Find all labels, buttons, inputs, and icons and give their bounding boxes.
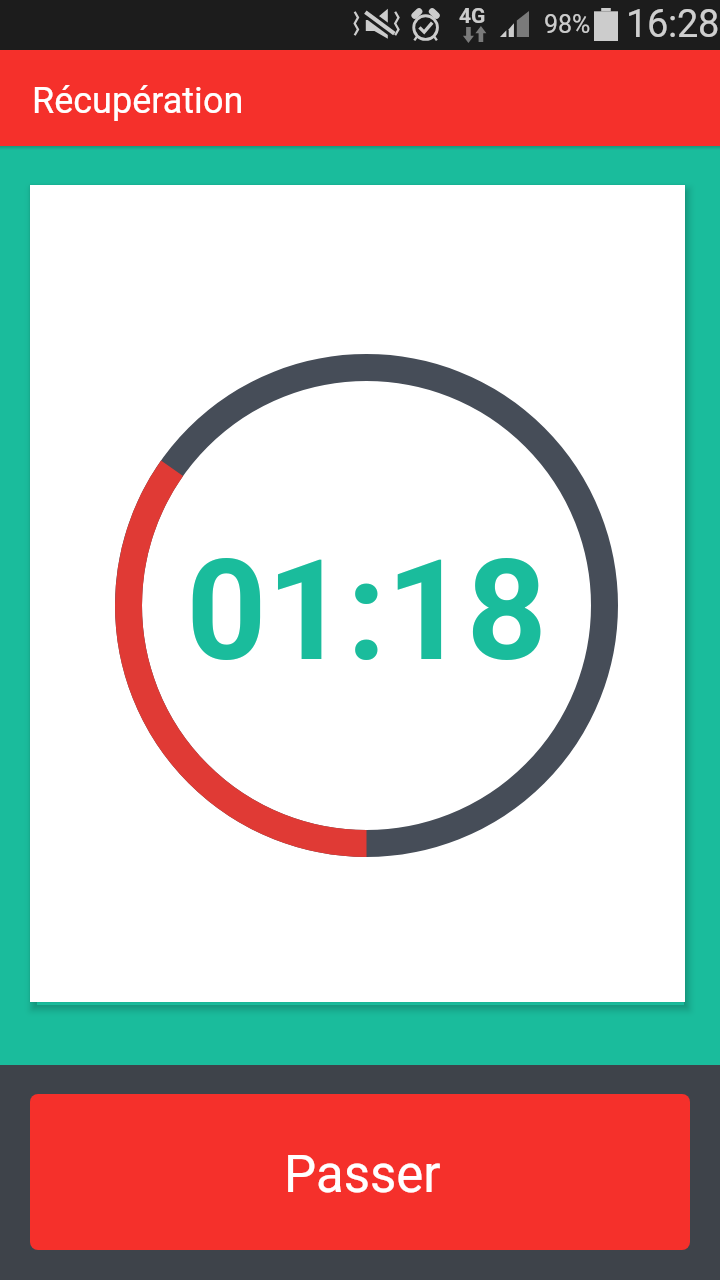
other: Battery 98 percent — [594, 8, 618, 41]
staticText: 16:28 — [626, 2, 720, 47]
other: Sound off, vibrate — [349, 10, 403, 40]
other: Mobile signal — [500, 11, 529, 37]
staticText: 4G — [459, 4, 486, 29]
staticText: Passer — [284, 1145, 441, 1205]
other: Alarm set — [410, 9, 440, 41]
staticText: Récupération — [32, 80, 244, 122]
button[interactable]: Passer — [30, 1094, 690, 1250]
staticText: 01:18 — [186, 529, 547, 693]
other: Mobile data active — [458, 25, 487, 44]
staticText: 98% — [544, 10, 591, 39]
